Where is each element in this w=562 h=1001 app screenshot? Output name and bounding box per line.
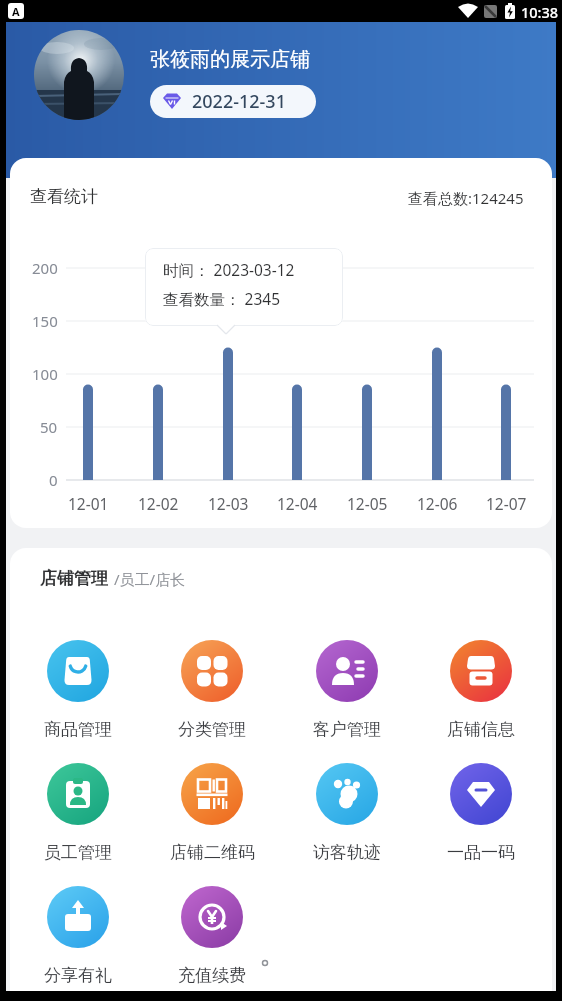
button[interactable]: 分类管理 bbox=[149, 640, 275, 740]
staticText: 12-03 bbox=[208, 493, 249, 514]
staticText: 商品管理 bbox=[44, 719, 112, 740]
staticText: 2022-12-31 bbox=[192, 89, 286, 114]
button[interactable]: 一品一码 bbox=[418, 763, 544, 863]
staticText: 分类管理 bbox=[178, 719, 246, 740]
button[interactable]: 2022-12-31 bbox=[150, 85, 316, 118]
staticText: 150 bbox=[32, 311, 58, 331]
staticText: 查看统计 bbox=[30, 186, 98, 207]
staticText: 12-05 bbox=[347, 493, 388, 514]
button[interactable] bbox=[34, 30, 124, 120]
staticText: 店铺管理 bbox=[40, 568, 108, 589]
button[interactable]: 访客轨迹 bbox=[284, 763, 410, 863]
staticText: 12-01 bbox=[68, 493, 109, 514]
staticText: 0 bbox=[49, 470, 58, 490]
staticText: /员工/店长 bbox=[114, 569, 186, 589]
staticText: A bbox=[12, 4, 20, 19]
staticText: 店铺二维码 bbox=[170, 842, 255, 863]
staticText: 50 bbox=[40, 417, 58, 437]
button[interactable]: 店铺信息 bbox=[418, 640, 544, 740]
button[interactable]: 员工管理 bbox=[15, 763, 141, 863]
staticText: 员工管理 bbox=[44, 842, 112, 863]
staticText: 查看数量： 2345 bbox=[163, 288, 280, 309]
staticText: 一品一码 bbox=[447, 842, 515, 863]
staticText: 充值续费 bbox=[178, 965, 246, 986]
staticText: 分享有礼 bbox=[44, 965, 112, 986]
button[interactable]: 分享有礼 bbox=[15, 886, 141, 986]
staticText: 时间： 2023-03-12 bbox=[163, 259, 295, 280]
button[interactable]: 客户管理 bbox=[284, 640, 410, 740]
staticText: 200 bbox=[32, 258, 58, 278]
staticText: 张筱雨的展示店铺 bbox=[150, 47, 310, 72]
staticText: 10:38 bbox=[521, 2, 559, 22]
staticText: 12-07 bbox=[486, 493, 527, 514]
button[interactable]: 商品管理 bbox=[15, 640, 141, 740]
button[interactable]: 店铺二维码 bbox=[149, 763, 275, 863]
staticText: 店铺信息 bbox=[447, 719, 515, 740]
button[interactable]: 充值续费 bbox=[149, 886, 275, 986]
staticText: 12-04 bbox=[277, 493, 318, 514]
staticText: 100 bbox=[32, 364, 58, 384]
staticText: 客户管理 bbox=[313, 719, 381, 740]
staticText: 12-02 bbox=[138, 493, 179, 514]
staticText: 访客轨迹 bbox=[313, 842, 381, 863]
staticText: 12-06 bbox=[417, 493, 458, 514]
staticText: 查看总数:124245 bbox=[408, 188, 524, 208]
